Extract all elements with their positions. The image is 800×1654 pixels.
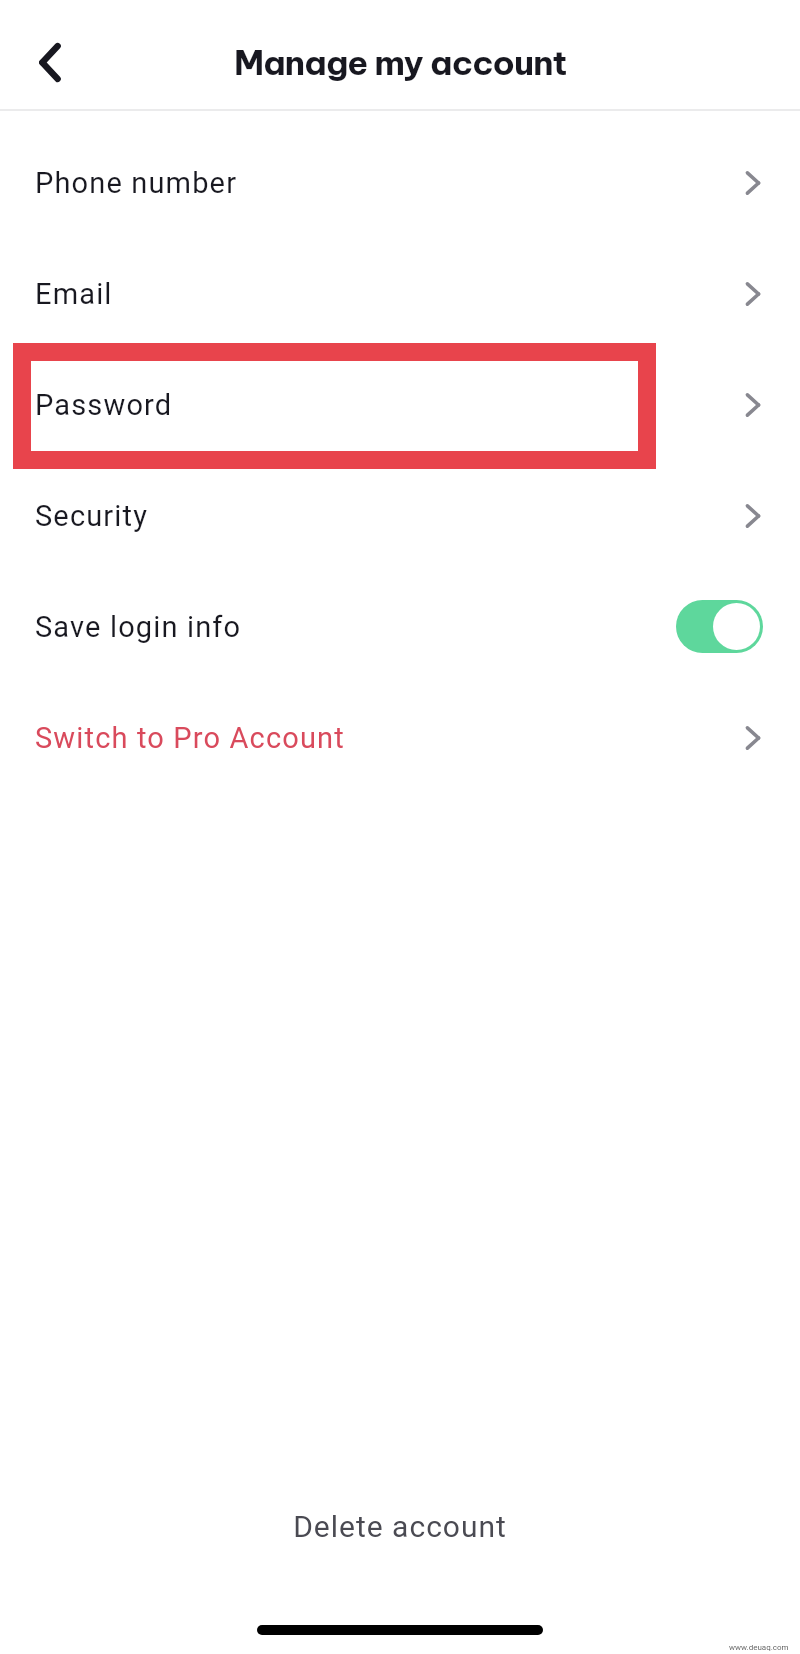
staticText: www.deuaq.com bbox=[729, 1643, 789, 1652]
staticText: Delete account bbox=[293, 1509, 507, 1544]
button[interactable]: Back bbox=[13, 20, 85, 92]
staticText: Manage my account bbox=[234, 41, 567, 84]
button[interactable]: Password bbox=[0, 349, 800, 460]
staticText: Switch to Pro Account bbox=[35, 721, 345, 755]
button[interactable]: Switch to Pro Account bbox=[0, 682, 800, 793]
button[interactable]: Security bbox=[0, 460, 800, 571]
staticText: Security bbox=[35, 499, 149, 533]
staticText: Password bbox=[35, 388, 173, 422]
staticText: Save login info bbox=[35, 610, 242, 644]
staticText: Phone number bbox=[35, 166, 238, 200]
button[interactable]: Save login info bbox=[676, 600, 763, 653]
button[interactable]: Delete account bbox=[269, 1501, 531, 1552]
staticText: Email bbox=[35, 277, 113, 311]
button[interactable]: Save login info bbox=[0, 571, 800, 682]
button[interactable]: Email bbox=[0, 238, 800, 349]
button[interactable]: Phone number bbox=[0, 127, 800, 238]
